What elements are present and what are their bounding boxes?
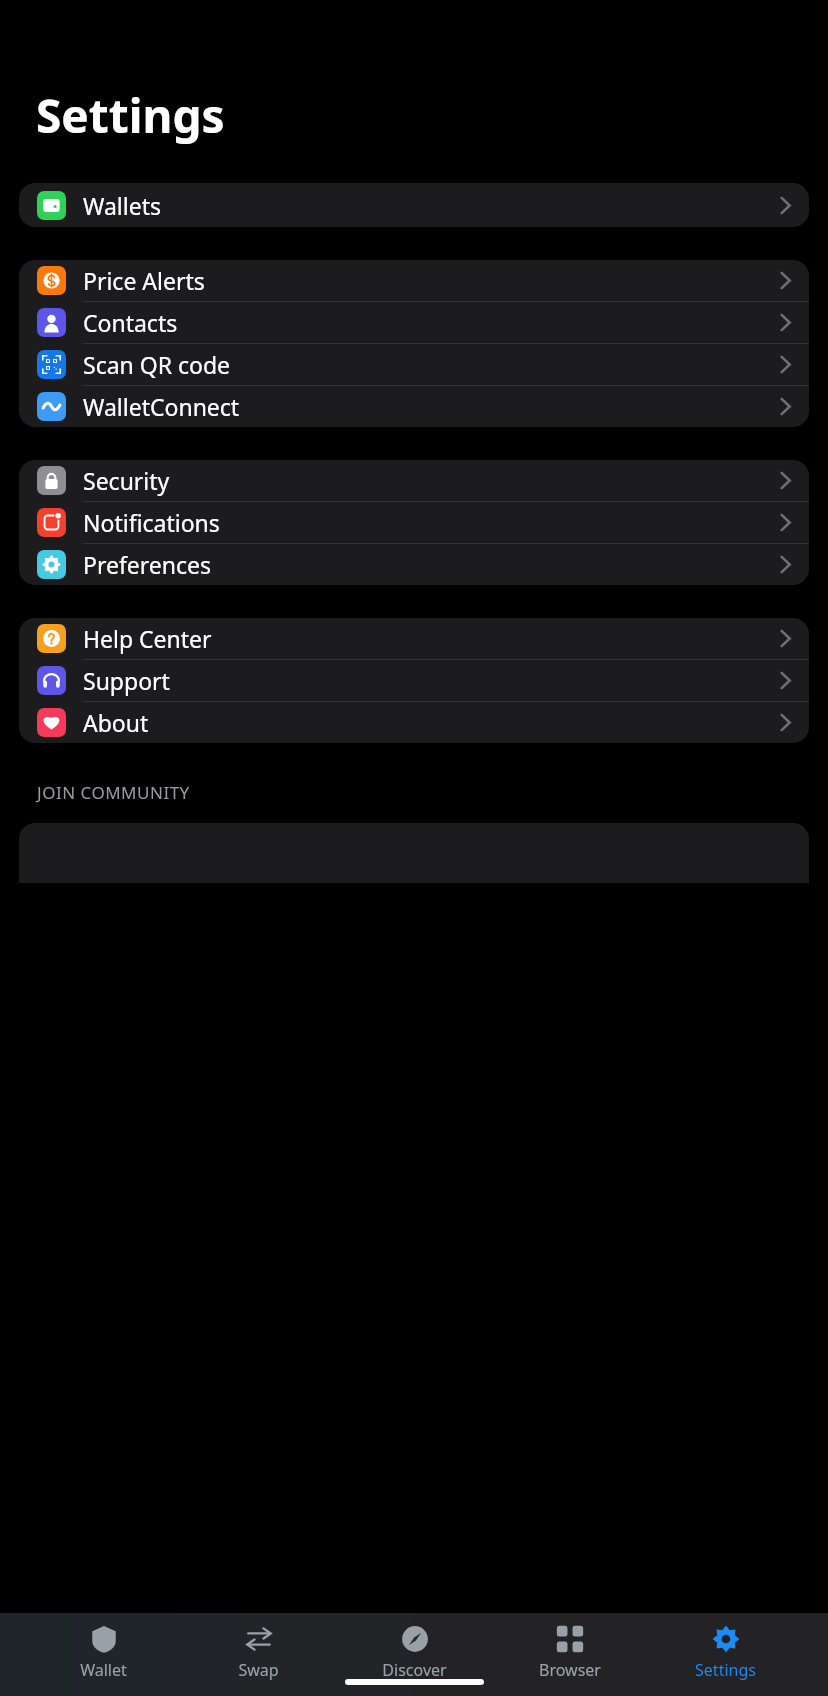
staticText: Scan QR code bbox=[83, 349, 231, 380]
staticText: Price Alerts bbox=[83, 265, 205, 296]
button[interactable]: Swap bbox=[206, 1622, 311, 1684]
staticText: Help Center bbox=[83, 623, 212, 654]
button[interactable]: Discover bbox=[362, 1622, 467, 1684]
other: Wallet bbox=[90, 1625, 118, 1653]
staticText: Wallet bbox=[80, 1659, 127, 1681]
staticText: Preferences bbox=[83, 549, 212, 580]
button[interactable]: Price Alerts bbox=[19, 260, 809, 301]
button[interactable]: Preferences bbox=[19, 544, 809, 585]
other: Discover bbox=[401, 1625, 429, 1653]
staticText: Notifications bbox=[83, 507, 220, 538]
button[interactable]: Scan QR code bbox=[19, 344, 809, 385]
staticText: Browser bbox=[539, 1659, 601, 1681]
button[interactable]: Contacts bbox=[19, 302, 809, 343]
staticText: Swap bbox=[238, 1659, 279, 1681]
button[interactable]: Notifications bbox=[19, 502, 809, 543]
staticText: Settings bbox=[695, 1659, 756, 1681]
button[interactable]: Browser bbox=[517, 1622, 622, 1684]
staticText: JOIN COMMUNITY bbox=[37, 781, 190, 804]
staticText: Settings bbox=[36, 84, 225, 147]
button[interactable]: Wallets bbox=[19, 183, 809, 227]
other: Swap bbox=[245, 1625, 273, 1653]
staticText: Support bbox=[83, 665, 170, 696]
staticText: Discover bbox=[382, 1659, 447, 1681]
staticText: WalletConnect bbox=[83, 391, 240, 422]
other: Settings bbox=[712, 1625, 740, 1653]
button[interactable]: About bbox=[19, 702, 809, 743]
staticText: About bbox=[83, 707, 149, 738]
staticText: Security bbox=[83, 465, 170, 496]
button[interactable]: WalletConnect bbox=[19, 386, 809, 427]
other: Browser bbox=[556, 1625, 584, 1653]
staticText: Wallets bbox=[83, 190, 161, 221]
staticText: Contacts bbox=[83, 307, 178, 338]
button[interactable]: Wallet bbox=[51, 1622, 156, 1684]
button[interactable]: Support bbox=[19, 660, 809, 701]
button[interactable]: Help Center bbox=[19, 618, 809, 659]
button[interactable]: Security bbox=[19, 460, 809, 501]
button[interactable]: Settings bbox=[673, 1622, 778, 1684]
